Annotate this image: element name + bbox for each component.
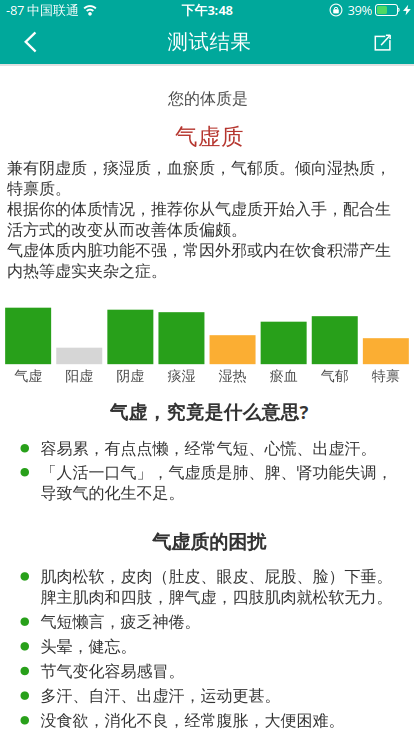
staticText: 下午3:48 — [181, 1, 232, 19]
staticText: 节气变化容易感冒。 — [40, 661, 184, 681]
staticText: 39% — [347, 1, 372, 19]
staticText: 气虚，究竟是什么意思? — [109, 399, 308, 424]
staticText: 气虚质 — [175, 123, 244, 151]
staticText: 容易累，有点点懒，经常气短、心慌、出虚汗。 — [40, 438, 376, 459]
staticText: 气短懒言，疲乏神倦。 — [40, 612, 200, 632]
staticText: 兼有阴虚质，痰湿质，血瘀质，气郁质。倾向湿热质， 特禀质。 根据你的体质情况，推… — [7, 158, 391, 281]
button[interactable]: Back — [0, 20, 50, 64]
staticText: 您的体质是 — [168, 88, 248, 109]
staticText: 湿热 — [219, 367, 247, 385]
staticText: 气虚质的困扰 — [152, 530, 266, 554]
staticText: 「人活一口气」，气虚质是肺、脾、肾功能失调， 导致气的化生不足。 — [40, 462, 392, 503]
staticText: 气虚 — [14, 367, 42, 385]
staticText: 瘀血 — [270, 367, 298, 385]
staticText: -87 中国联通 — [6, 1, 79, 19]
staticText: 肌肉松软，皮肉（肚皮、眼皮、屁股、脸）下垂。 脾主肌肉和四肢，脾气虚，四肢肌肉就… — [40, 567, 392, 607]
staticText: 头晕，健忘。 — [40, 637, 136, 657]
staticText: 气郁 — [321, 367, 349, 385]
staticText: 特禀 — [372, 367, 400, 385]
staticText: 没食欲，消化不良，经常腹胀，大便困难。 — [40, 711, 344, 731]
staticText: 测试结果 — [167, 29, 251, 55]
staticText: 多汗、自汗、出虚汗，运动更甚。 — [40, 686, 280, 706]
staticText: 痰湿 — [167, 367, 195, 385]
staticText: 阳虚 — [65, 367, 93, 385]
button[interactable]: Share — [360, 20, 414, 64]
staticText: 阴虚 — [116, 367, 144, 385]
